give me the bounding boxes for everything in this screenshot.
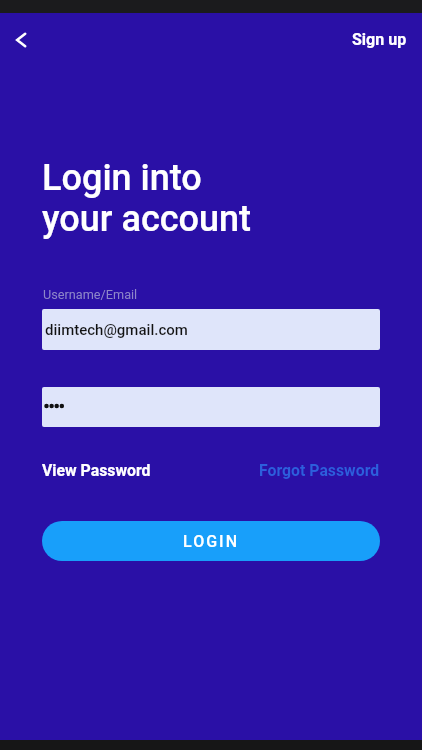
staticText: Username/Email xyxy=(43,287,138,302)
staticText: Forgot Password xyxy=(259,461,380,480)
button[interactable] xyxy=(5,24,37,56)
button[interactable]: Forgot Password xyxy=(259,457,380,484)
button[interactable]: diimtech@gmail.com xyxy=(42,309,380,350)
staticText: diimtech@gmail.com xyxy=(45,321,188,339)
button[interactable]: Sign up xyxy=(337,26,422,53)
staticText: LOGIN xyxy=(183,532,239,551)
staticText: Login into your account xyxy=(42,157,252,239)
button[interactable] xyxy=(42,387,380,427)
staticText: View Password xyxy=(42,461,151,480)
button[interactable]: LOGIN xyxy=(42,521,380,561)
staticText: Sign up xyxy=(352,30,407,49)
button[interactable]: View Password xyxy=(42,457,151,484)
